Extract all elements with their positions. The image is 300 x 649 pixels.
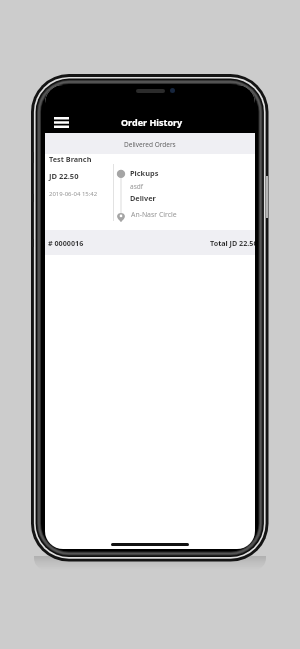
staticText: Order History <box>121 116 183 128</box>
button[interactable]: Delivered Orders <box>45 133 255 154</box>
staticText: Deliver <box>130 193 156 203</box>
staticText: asdf <box>130 182 143 191</box>
staticText: # 0000016 <box>48 238 84 248</box>
button[interactable]: Test Branch <box>45 154 255 255</box>
button[interactable]: Open navigation menu <box>48 112 74 132</box>
staticText: 2019-06-04 15:42 <box>49 190 98 198</box>
staticText: Delivered Orders <box>124 140 176 149</box>
staticText: JD 22.50 <box>49 171 79 181</box>
staticText: Test Branch <box>49 154 92 164</box>
staticText: Pickups <box>130 168 159 178</box>
staticText: An-Nasr Circle <box>131 210 177 219</box>
staticText: Total JD 22.50 <box>210 238 255 248</box>
